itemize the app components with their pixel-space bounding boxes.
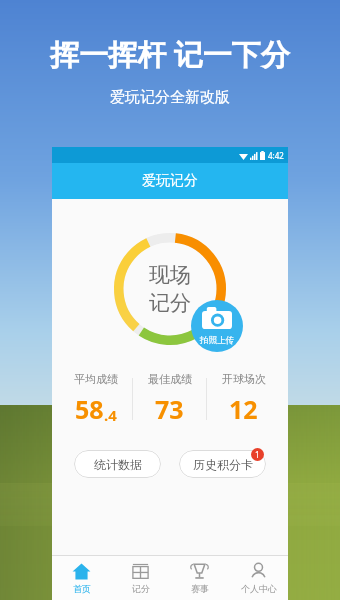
staticText: 12 <box>229 392 258 426</box>
staticText: 爱玩记分 <box>142 172 198 190</box>
staticText: 拍照上传 <box>200 335 234 346</box>
staticText: 历史积分卡 <box>193 457 253 472</box>
button[interactable]: 开球场次 <box>207 372 280 426</box>
button[interactable]: 记分 <box>111 556 170 600</box>
staticText: 个人中心 <box>241 583 277 594</box>
button[interactable]: 最佳成绩 <box>133 372 206 426</box>
staticText: 挥一挥杆 记一下分 <box>50 34 290 74</box>
button[interactable]: 拍照上传 <box>191 300 243 352</box>
staticText: 1 <box>255 449 260 460</box>
staticText: 开球场次 <box>222 372 266 386</box>
staticText: 爱玩记分全新改版 <box>110 88 230 107</box>
button[interactable]: 首页 <box>52 556 111 600</box>
staticText: 赛事 <box>191 583 209 594</box>
button[interactable]: 平均成绩 <box>60 372 132 426</box>
button[interactable]: 个人中心 <box>229 556 288 600</box>
staticText: 首页 <box>73 583 91 594</box>
button[interactable]: 历史积分卡 <box>179 450 266 478</box>
staticText: 记分 <box>132 583 150 594</box>
staticText: 73 <box>155 392 184 426</box>
staticText: .4 <box>104 405 117 425</box>
staticText: 4:42 <box>268 150 284 161</box>
staticText: 现场 <box>149 262 191 288</box>
staticText: 58 <box>75 392 104 426</box>
staticText: 记分 <box>149 290 191 316</box>
staticText: 最佳成绩 <box>148 372 192 386</box>
staticText: 统计数据 <box>94 457 142 472</box>
button[interactable]: 统计数据 <box>74 450 161 478</box>
button[interactable]: 赛事 <box>170 556 229 600</box>
staticText: 平均成绩 <box>74 372 118 386</box>
